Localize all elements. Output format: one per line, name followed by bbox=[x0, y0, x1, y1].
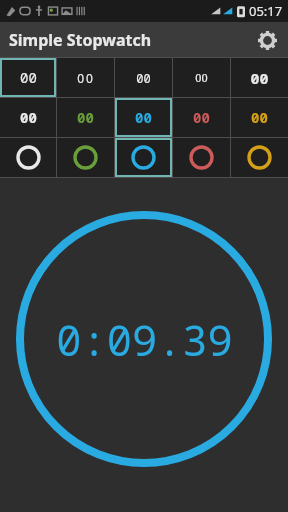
button[interactable]: 00 bbox=[231, 58, 288, 97]
staticText: 00 bbox=[77, 108, 94, 127]
staticText: 00 bbox=[195, 70, 208, 85]
button[interactable] bbox=[115, 138, 172, 177]
staticText: 00 bbox=[20, 108, 37, 127]
staticText: 00 bbox=[20, 68, 37, 87]
staticText: 00 bbox=[251, 108, 268, 127]
staticText: 00 bbox=[135, 108, 152, 127]
staticText: 0:09.39 bbox=[56, 311, 233, 368]
button[interactable]: 00 bbox=[57, 58, 114, 97]
button[interactable]: 00 bbox=[231, 98, 288, 137]
button[interactable]: 00 bbox=[173, 58, 230, 97]
staticText: 00 bbox=[77, 70, 95, 86]
button[interactable] bbox=[57, 138, 114, 177]
staticText: Simple Stopwatch bbox=[9, 29, 152, 51]
button[interactable]: 00 bbox=[0, 58, 56, 97]
button[interactable] bbox=[231, 138, 288, 177]
staticText: 00 bbox=[250, 68, 269, 88]
button[interactable]: Start or stop stopwatch bbox=[16, 211, 272, 467]
staticText: 00 bbox=[193, 108, 210, 127]
button[interactable]: 00 bbox=[115, 98, 172, 137]
button[interactable] bbox=[0, 138, 56, 177]
button[interactable] bbox=[173, 138, 230, 177]
staticText: 00 bbox=[136, 70, 151, 86]
staticText: 05:17 bbox=[249, 2, 283, 20]
button[interactable]: 00 bbox=[115, 58, 172, 97]
button[interactable]: 00 bbox=[57, 98, 114, 137]
button[interactable]: 00 bbox=[0, 98, 56, 137]
button[interactable]: Settings bbox=[252, 25, 282, 55]
button[interactable]: 00 bbox=[173, 98, 230, 137]
